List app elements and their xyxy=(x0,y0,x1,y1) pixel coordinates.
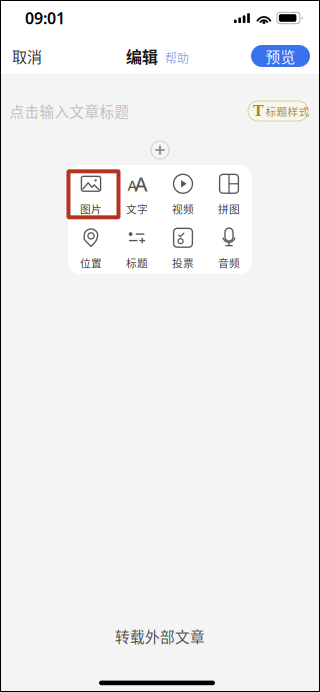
staticText: 转载外部文章 xyxy=(115,625,205,647)
button[interactable]: 标题 xyxy=(114,227,160,269)
staticText: A xyxy=(134,170,147,197)
staticText: 帮助 xyxy=(165,49,189,66)
button[interactable]: 音频 xyxy=(206,227,252,269)
button[interactable]: 拼图 xyxy=(206,173,252,215)
staticText: 视频 xyxy=(172,201,194,216)
staticText: 点击输入文章标题 xyxy=(9,100,129,121)
button[interactable]: 取消 xyxy=(12,39,56,73)
staticText: 编辑 xyxy=(126,44,158,68)
staticText: 预览 xyxy=(265,45,295,67)
staticText: 取消 xyxy=(12,45,42,67)
staticText: 文字 xyxy=(126,201,148,216)
button[interactable]: 图片 xyxy=(68,173,114,215)
staticText: 拼图 xyxy=(218,201,240,216)
staticText: 音频 xyxy=(218,255,240,270)
button[interactable]: 投票 xyxy=(160,227,206,269)
staticText: 投票 xyxy=(172,255,194,270)
button[interactable]: 位置 xyxy=(68,227,114,269)
button[interactable]: T xyxy=(248,101,308,121)
button[interactable]: A xyxy=(114,173,160,215)
staticText: 标题样式 xyxy=(265,103,309,119)
staticText: T xyxy=(253,103,263,119)
button[interactable]: Add content block xyxy=(145,135,175,165)
button[interactable]: 帮助 xyxy=(165,49,189,66)
button[interactable]: 转载外部文章 xyxy=(0,613,320,659)
button[interactable]: 预览 xyxy=(251,45,310,67)
button[interactable]: 视频 xyxy=(160,173,206,215)
staticText: 标题 xyxy=(126,255,148,270)
staticText: 09:01 xyxy=(25,7,65,29)
staticText: 图片 xyxy=(80,201,102,216)
staticText: A xyxy=(127,175,137,195)
staticText: 位置 xyxy=(80,255,102,270)
